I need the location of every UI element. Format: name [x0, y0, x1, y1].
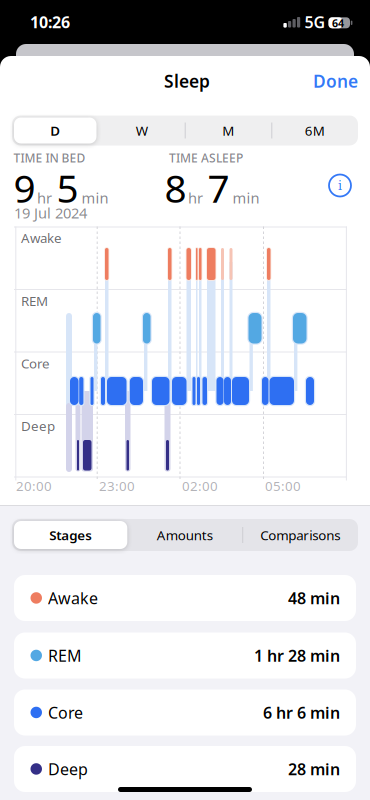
button[interactable]: Amounts [127, 519, 242, 551]
button[interactable]: Comparisons [243, 519, 358, 551]
staticText: Deep [48, 758, 88, 780]
staticText: 1 hr 28 min [254, 645, 340, 666]
button[interactable]: Core [14, 689, 356, 735]
button[interactable]: Stages [14, 521, 127, 549]
staticText: Done [313, 69, 358, 92]
staticText: 10:26 [30, 11, 70, 33]
staticText: 28 min [288, 758, 340, 780]
staticText: TIME ASLEEP [169, 150, 243, 166]
staticText: 5 [56, 162, 78, 213]
button[interactable]: M [185, 115, 271, 145]
staticText: TIME IN BED [13, 150, 85, 166]
staticText: hr [188, 188, 203, 207]
staticText: Sleep [164, 69, 210, 92]
button[interactable]: D [14, 117, 96, 143]
staticText: hr [37, 188, 52, 207]
button[interactable]: 6M [272, 115, 358, 145]
staticText: 7 [207, 162, 229, 213]
button[interactable]: Done [288, 66, 358, 96]
staticText: 8 [164, 162, 186, 213]
staticText: Core [21, 354, 50, 372]
staticText: REM [21, 292, 48, 310]
staticText: 6M [305, 122, 325, 139]
staticText: W [136, 122, 148, 139]
button[interactable]: Awake [14, 575, 356, 621]
staticText: REM [48, 645, 82, 666]
staticText: Core [48, 702, 83, 723]
button[interactable]: REM [14, 632, 356, 678]
button[interactable]: Deep [14, 746, 356, 792]
staticText: Awake [21, 229, 62, 247]
staticText: 23:00 [99, 477, 135, 495]
staticText: Awake [48, 587, 98, 609]
staticText: 05:00 [265, 477, 301, 495]
staticText: 19 Jul 2024 [14, 203, 87, 222]
staticText: Stages [49, 526, 92, 544]
staticText: 20:00 [16, 477, 52, 495]
staticText: i [338, 178, 342, 193]
button[interactable]: Info [327, 172, 353, 198]
staticText: D [50, 122, 60, 139]
staticText: Comparisons [260, 526, 340, 544]
staticText: 5G [304, 11, 325, 33]
staticText: min [81, 188, 108, 207]
staticText: Deep [21, 417, 55, 435]
staticText: 9 [13, 162, 35, 213]
staticText: 02:00 [182, 477, 218, 495]
staticText: min [232, 188, 259, 207]
staticText: 64 [332, 16, 344, 30]
staticText: 48 min [288, 587, 340, 609]
button[interactable]: W [99, 115, 185, 145]
staticText: 6 hr 6 min [263, 702, 340, 723]
staticText: M [222, 122, 234, 139]
staticText: Amounts [157, 526, 213, 544]
